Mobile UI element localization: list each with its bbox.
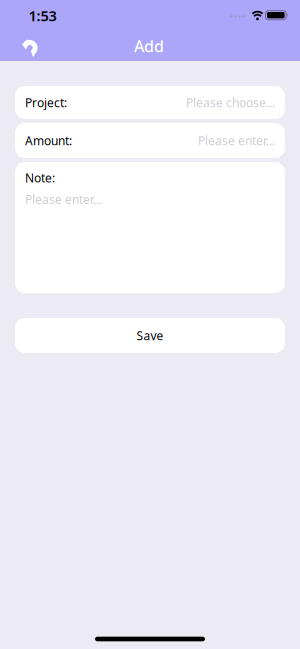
button[interactable]: Project:	[15, 86, 285, 119]
staticText: 1:53	[28, 6, 56, 25]
staticText: Amount:	[25, 132, 72, 148]
button[interactable]	[17, 35, 43, 61]
button[interactable]: Save	[15, 318, 285, 353]
staticText: Please enter...	[198, 132, 275, 148]
staticText: Please enter...	[25, 191, 102, 207]
staticText: Project:	[25, 94, 67, 110]
button[interactable]: Amount:	[15, 123, 285, 158]
staticText: Add	[134, 35, 164, 57]
button[interactable]: Note:	[15, 162, 285, 293]
staticText: Note:	[25, 170, 55, 186]
staticText: Save	[136, 327, 163, 343]
staticText: Please choose...	[186, 94, 275, 110]
